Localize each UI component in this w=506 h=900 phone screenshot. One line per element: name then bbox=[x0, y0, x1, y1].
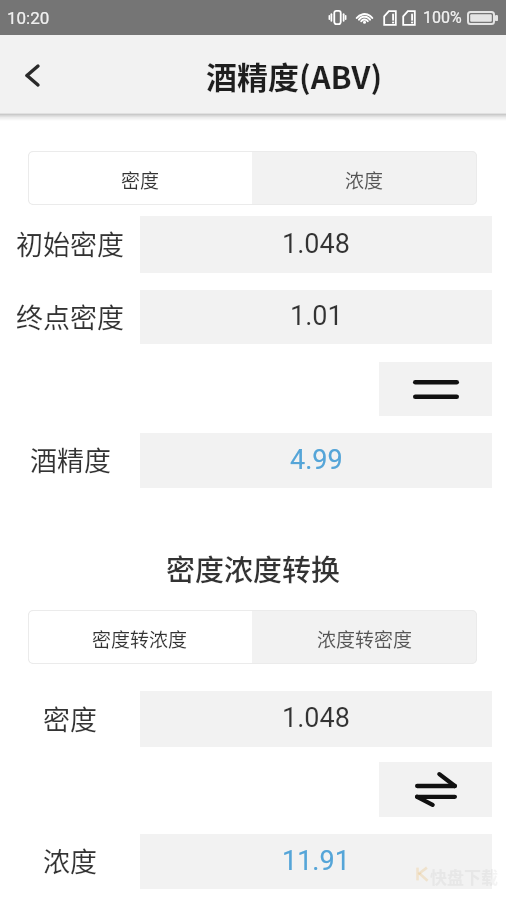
staticText: 密度 bbox=[121, 166, 160, 194]
staticText: 浓度 bbox=[43, 841, 97, 880]
staticText: 1.048 bbox=[282, 702, 350, 734]
staticText: 10:20 bbox=[7, 8, 50, 28]
staticText: 密度 bbox=[43, 699, 97, 738]
staticText: 快盘下载 bbox=[430, 864, 498, 889]
button[interactable]: 1.048 bbox=[140, 691, 492, 747]
button[interactable]: 浓度转密度 bbox=[252, 610, 477, 664]
button[interactable]: 密度 bbox=[28, 151, 252, 205]
staticText: 11.91 bbox=[282, 845, 350, 877]
staticText: 密度转浓度 bbox=[92, 625, 188, 653]
button[interactable]: 1.048 bbox=[140, 216, 492, 273]
button[interactable]: Back bbox=[0, 35, 64, 115]
button[interactable]: 1.01 bbox=[140, 290, 492, 344]
button[interactable]: Swap bbox=[379, 762, 492, 817]
staticText: 酒精度 bbox=[30, 440, 111, 479]
button[interactable]: Calculate bbox=[379, 362, 492, 416]
staticText: 酒精度(ABV) bbox=[206, 53, 383, 98]
staticText: 1.01 bbox=[290, 300, 343, 332]
staticText: 4.99 bbox=[290, 444, 343, 476]
button[interactable]: 密度转浓度 bbox=[28, 610, 252, 664]
button[interactable]: 11.91 bbox=[140, 834, 492, 889]
staticText: 终点密度 bbox=[16, 297, 124, 336]
staticText: 浓度转密度 bbox=[317, 625, 413, 653]
button[interactable]: 4.99 bbox=[140, 433, 492, 488]
button[interactable]: 浓度 bbox=[252, 151, 477, 205]
staticText: 初始密度 bbox=[16, 224, 124, 263]
staticText: 100% bbox=[423, 8, 462, 27]
staticText: 1.048 bbox=[282, 228, 350, 260]
staticText: 浓度 bbox=[345, 166, 384, 194]
staticText: 密度浓度转换 bbox=[0, 547, 506, 589]
